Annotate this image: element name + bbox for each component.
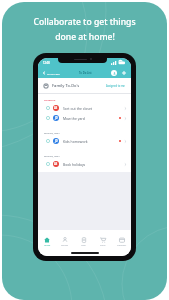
button[interactable]: JD (38, 136, 131, 146)
staticText: AS (54, 106, 58, 110)
staticText: Sort out the closet (63, 106, 93, 111)
button[interactable]: JD (38, 113, 131, 123)
staticText: done at home! (55, 31, 115, 43)
button[interactable]: Add task (121, 70, 127, 76)
staticText: MAR 26, 2021 (44, 131, 60, 134)
staticText: Kids homework (63, 139, 88, 144)
staticText: OVERDUE (44, 98, 56, 101)
button[interactable]: Members (111, 70, 117, 76)
staticText: Shop (100, 244, 106, 247)
button[interactable]: Home (38, 237, 56, 247)
button[interactable]: AS (38, 103, 131, 113)
staticText: Home (44, 244, 51, 247)
staticText: Calendar (117, 244, 127, 247)
staticText: MAR 28, 2021 (44, 154, 60, 157)
button[interactable]: AS (38, 159, 131, 169)
staticText: Book holidays (63, 162, 86, 167)
staticText: People (61, 244, 69, 247)
button[interactable]: To Do Lists (41, 71, 61, 75)
button[interactable]: People (56, 237, 74, 247)
staticText: 12:00 (43, 61, 50, 65)
staticText: To Do List (79, 71, 92, 75)
staticText: JD (55, 116, 58, 120)
staticText: AS (54, 162, 58, 166)
button[interactable]: Lists (74, 237, 93, 247)
staticText: Mow the yard (63, 116, 85, 121)
staticText: Assigned to me (106, 84, 125, 88)
staticText: JD (55, 139, 58, 143)
button[interactable]: Shop (93, 237, 112, 247)
staticText: Lists (81, 244, 86, 247)
staticText: Collaborate to get things (33, 16, 136, 28)
staticText: To Do Lists (47, 72, 60, 75)
button[interactable]: Calendar (112, 237, 131, 247)
staticText: Family To-Do's (52, 83, 80, 88)
